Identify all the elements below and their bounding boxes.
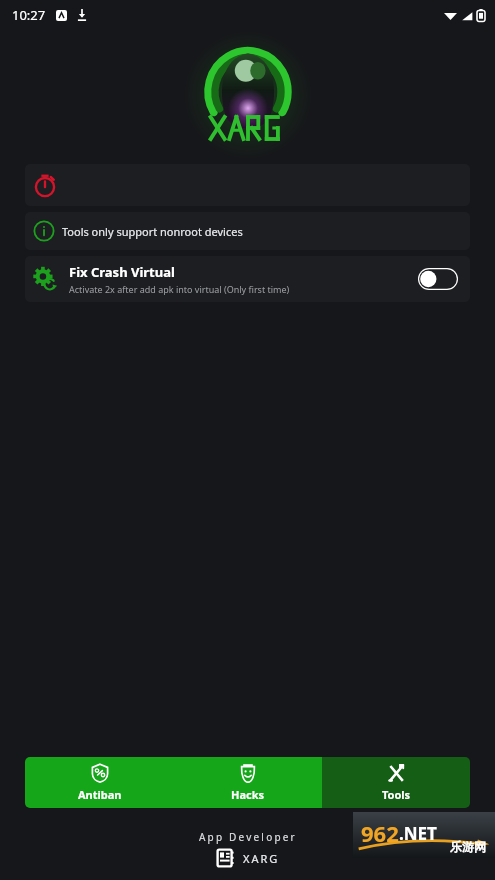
other: Timer <box>32 172 58 198</box>
other: Fix crash virtual <box>32 266 58 292</box>
button[interactable]: Tools <box>322 757 470 808</box>
staticText: XARG <box>243 851 280 866</box>
button[interactable]: Information <box>25 212 470 250</box>
staticText: Tools <box>382 787 411 802</box>
other: Developer <box>216 848 236 868</box>
staticText: Antiban <box>78 787 122 802</box>
button[interactable]: Hacks <box>174 757 322 808</box>
button[interactable]: Developer <box>216 848 280 868</box>
button[interactable]: Antiban <box>25 757 174 808</box>
staticText: App Developer <box>199 830 297 844</box>
staticText: Fix Crash Virtual <box>69 263 175 281</box>
staticText: Hacks <box>231 787 265 802</box>
other: Information <box>32 219 56 243</box>
staticText: .NET <box>399 822 437 845</box>
staticText: 10:27 <box>12 6 46 24</box>
button[interactable]: Timer <box>25 164 470 206</box>
button[interactable]: Fix Crash Virtual toggle <box>418 268 458 290</box>
staticText: 乐游网 <box>450 839 486 854</box>
staticText: Activate 2x after add apk into virtual (… <box>69 283 290 295</box>
staticText: Tools only support nonroot devices <box>62 224 243 239</box>
button[interactable]: Fix crash virtual <box>25 256 470 302</box>
staticText: 962 <box>361 818 399 848</box>
